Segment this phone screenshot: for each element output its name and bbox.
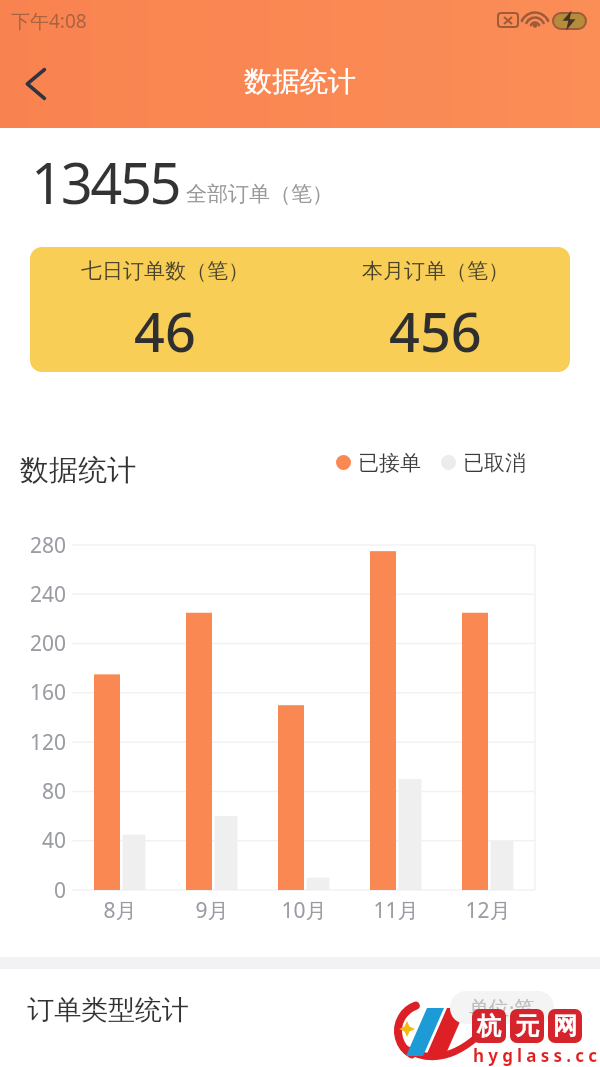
staticText: 网 (553, 1011, 577, 1041)
staticText: 订单类型统计 (27, 993, 189, 1027)
staticText: 杭 (477, 1011, 501, 1041)
staticText: 160 (20, 678, 66, 707)
staticText: 10月 (264, 896, 344, 925)
staticText: 已取消 (463, 450, 526, 474)
staticText: 9月 (172, 896, 252, 925)
staticText: 七日订单数（笔） (81, 258, 249, 284)
staticText: 240 (20, 580, 66, 609)
staticText: 46 (134, 294, 196, 368)
staticText: 单位·笔 (469, 994, 535, 1021)
button[interactable] (441, 455, 456, 470)
staticText: 280 (20, 531, 66, 560)
staticText: 13455 (31, 144, 180, 220)
staticText: hyglass.cc (473, 1044, 600, 1067)
staticText: 本月订单（笔） (362, 258, 509, 284)
staticText: 元 (515, 1011, 539, 1041)
button[interactable]: 七日订单数（笔） (30, 247, 570, 372)
staticText: 下午4:08 (11, 8, 87, 34)
button[interactable] (14, 60, 60, 106)
staticText: 456 (389, 294, 482, 368)
staticText: 12月 (448, 896, 528, 925)
button[interactable] (336, 455, 351, 470)
staticText: 120 (20, 728, 66, 757)
staticText: 数据统计 (20, 452, 136, 489)
staticText: 8月 (80, 896, 160, 925)
staticText: 11月 (356, 896, 436, 925)
staticText: 0 (20, 876, 66, 905)
staticText: 全部订单（笔） (186, 181, 333, 207)
staticText: 80 (20, 777, 66, 806)
staticText: 数据统计 (244, 64, 356, 99)
staticText: 200 (20, 629, 66, 658)
staticText: 40 (20, 826, 66, 855)
staticText: 已接单 (358, 450, 421, 474)
